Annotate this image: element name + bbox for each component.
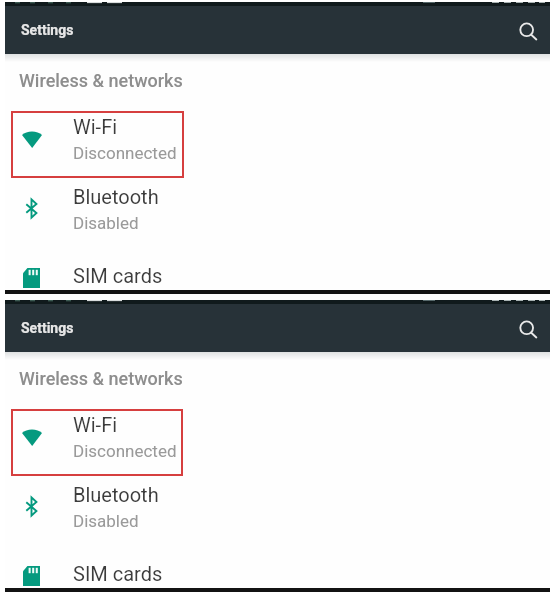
button[interactable]: Wi-Fi [5,402,550,471]
staticText: Disabled [73,213,139,233]
button[interactable]: Search [510,14,546,50]
staticText: Wi-Fi [73,413,118,436]
button[interactable]: Search [510,312,546,348]
staticText: Bluetooth [73,483,159,506]
button[interactable]: Bluetooth [5,472,550,541]
staticText: Disconnected [73,441,177,461]
staticText: SIM cards [73,562,163,585]
staticText: Wireless & networks [19,70,183,91]
button[interactable]: SIM cards [5,541,550,593]
staticText: Disabled [73,511,139,531]
staticText: Bluetooth [73,185,159,208]
staticText: SIM cards [73,264,163,287]
button[interactable]: Bluetooth [5,174,550,243]
staticText: Settings [21,320,74,336]
staticText: Settings [21,22,74,38]
staticText: Wi-Fi [73,115,118,138]
button[interactable]: SIM cards [5,243,550,312]
button[interactable]: Wi-Fi [5,104,550,173]
staticText: Wireless & networks [19,368,183,389]
staticText: Disconnected [73,143,177,163]
